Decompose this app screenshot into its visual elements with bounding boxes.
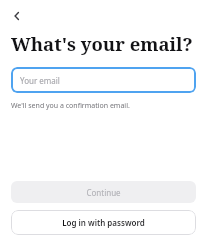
button[interactable]: Log in with password [11, 210, 196, 235]
staticText: Continue [86, 187, 121, 198]
staticText: We'll send you a confirmation email. [11, 101, 130, 111]
staticText: Your email [20, 75, 60, 86]
button[interactable]: Continue [11, 181, 196, 203]
staticText: What's your email? [11, 31, 193, 56]
button[interactable]: Back [6, 5, 28, 27]
button[interactable]: Your email [11, 67, 196, 93]
staticText: Log in with password [62, 217, 145, 228]
